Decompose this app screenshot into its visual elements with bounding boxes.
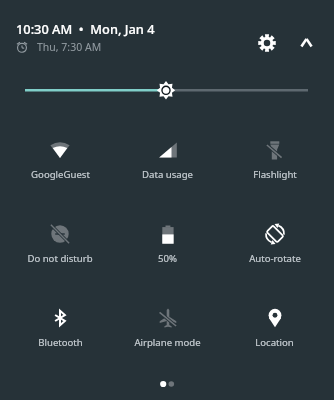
- staticText: GoogleGuest: [31, 168, 90, 181]
- staticText: Thu, 7:30 AM: [37, 40, 102, 54]
- button[interactable]: Do not disturb: [6, 196, 114, 280]
- button[interactable]: Settings: [252, 28, 281, 57]
- button[interactable]: Brightness: [0, 78, 334, 103]
- staticText: Airplane mode: [134, 336, 201, 349]
- button[interactable]: Bluetooth: [6, 280, 114, 364]
- staticText: Bluetooth: [38, 336, 83, 349]
- button[interactable]: Location: [221, 280, 328, 364]
- staticText: Flashlight: [253, 168, 297, 181]
- button[interactable]: GoogleGuest: [6, 112, 114, 196]
- staticText: Data usage: [142, 168, 193, 181]
- staticText: 10:30 AM • Mon, Jan 4: [16, 20, 155, 37]
- staticText: Location: [255, 336, 294, 349]
- button[interactable]: Collapse: [292, 28, 320, 56]
- staticText: Do not disturb: [27, 252, 93, 265]
- button[interactable]: Flashlight: [221, 112, 328, 196]
- button[interactable]: Airplane mode: [114, 280, 221, 364]
- staticText: Auto-rotate: [249, 252, 301, 265]
- staticText: 50%: [158, 252, 177, 265]
- button[interactable]: 50%: [114, 196, 221, 280]
- button[interactable]: Auto-rotate: [221, 196, 328, 280]
- button[interactable]: Data usage: [114, 112, 221, 196]
